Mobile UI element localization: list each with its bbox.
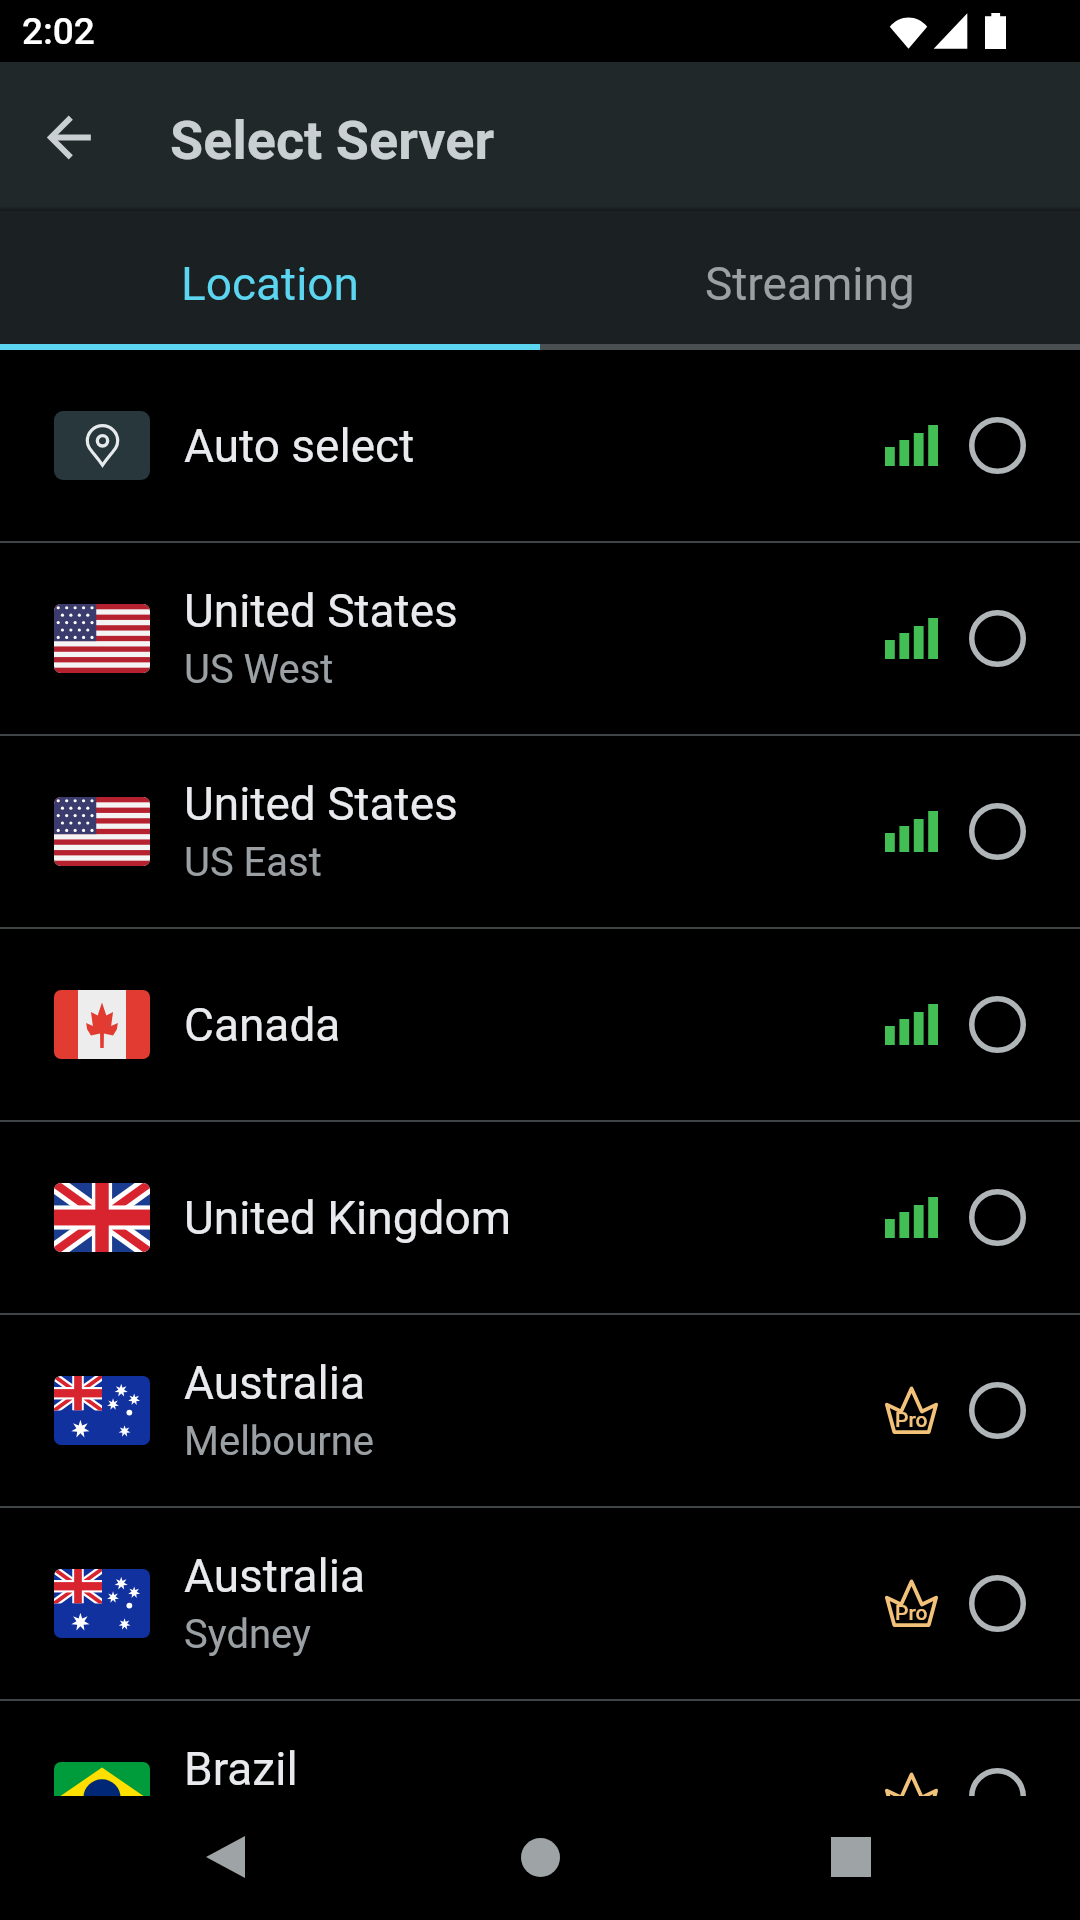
staticText: United Kingdom [184, 1191, 512, 1245]
button[interactable]: United States [0, 543, 1080, 734]
button[interactable]: Canada [0, 929, 1080, 1120]
staticText: Canada [184, 998, 341, 1052]
button[interactable]: Brazil [0, 1701, 1080, 1892]
staticText: Brazil [184, 1742, 298, 1796]
staticText: Streaming [705, 257, 915, 311]
staticText: United States [184, 777, 458, 831]
button[interactable]: United States [0, 736, 1080, 927]
staticText: US West [184, 646, 334, 693]
staticText: United States [184, 584, 458, 638]
button[interactable]: United Kingdom [0, 1122, 1080, 1313]
staticText: Select Server [170, 109, 495, 172]
button[interactable]: Back [165, 1797, 285, 1917]
button[interactable]: Navigate up [26, 93, 114, 181]
staticText: Melbourne [184, 1418, 375, 1465]
staticText: Auto select [184, 419, 415, 473]
button[interactable]: Auto select [0, 350, 1080, 541]
button[interactable]: Australia [0, 1315, 1080, 1506]
button[interactable]: Australia [0, 1508, 1080, 1699]
staticText: Sao Paulo [184, 1804, 364, 1851]
staticText: 2:02 [22, 10, 95, 53]
staticText: Location [181, 257, 359, 311]
button[interactable]: Recent apps [791, 1797, 911, 1917]
button[interactable]: Home [480, 1797, 600, 1917]
staticText: Pro [895, 1601, 928, 1626]
button[interactable]: Location [0, 217, 540, 350]
staticText: Australia [184, 1356, 366, 1410]
staticText: Pro [895, 1794, 928, 1819]
staticText: Pro [895, 1408, 928, 1433]
staticText: Australia [184, 1549, 366, 1603]
staticText: Sydney [184, 1611, 311, 1658]
button[interactable]: Streaming [540, 217, 1080, 350]
staticText: US East [184, 839, 322, 886]
